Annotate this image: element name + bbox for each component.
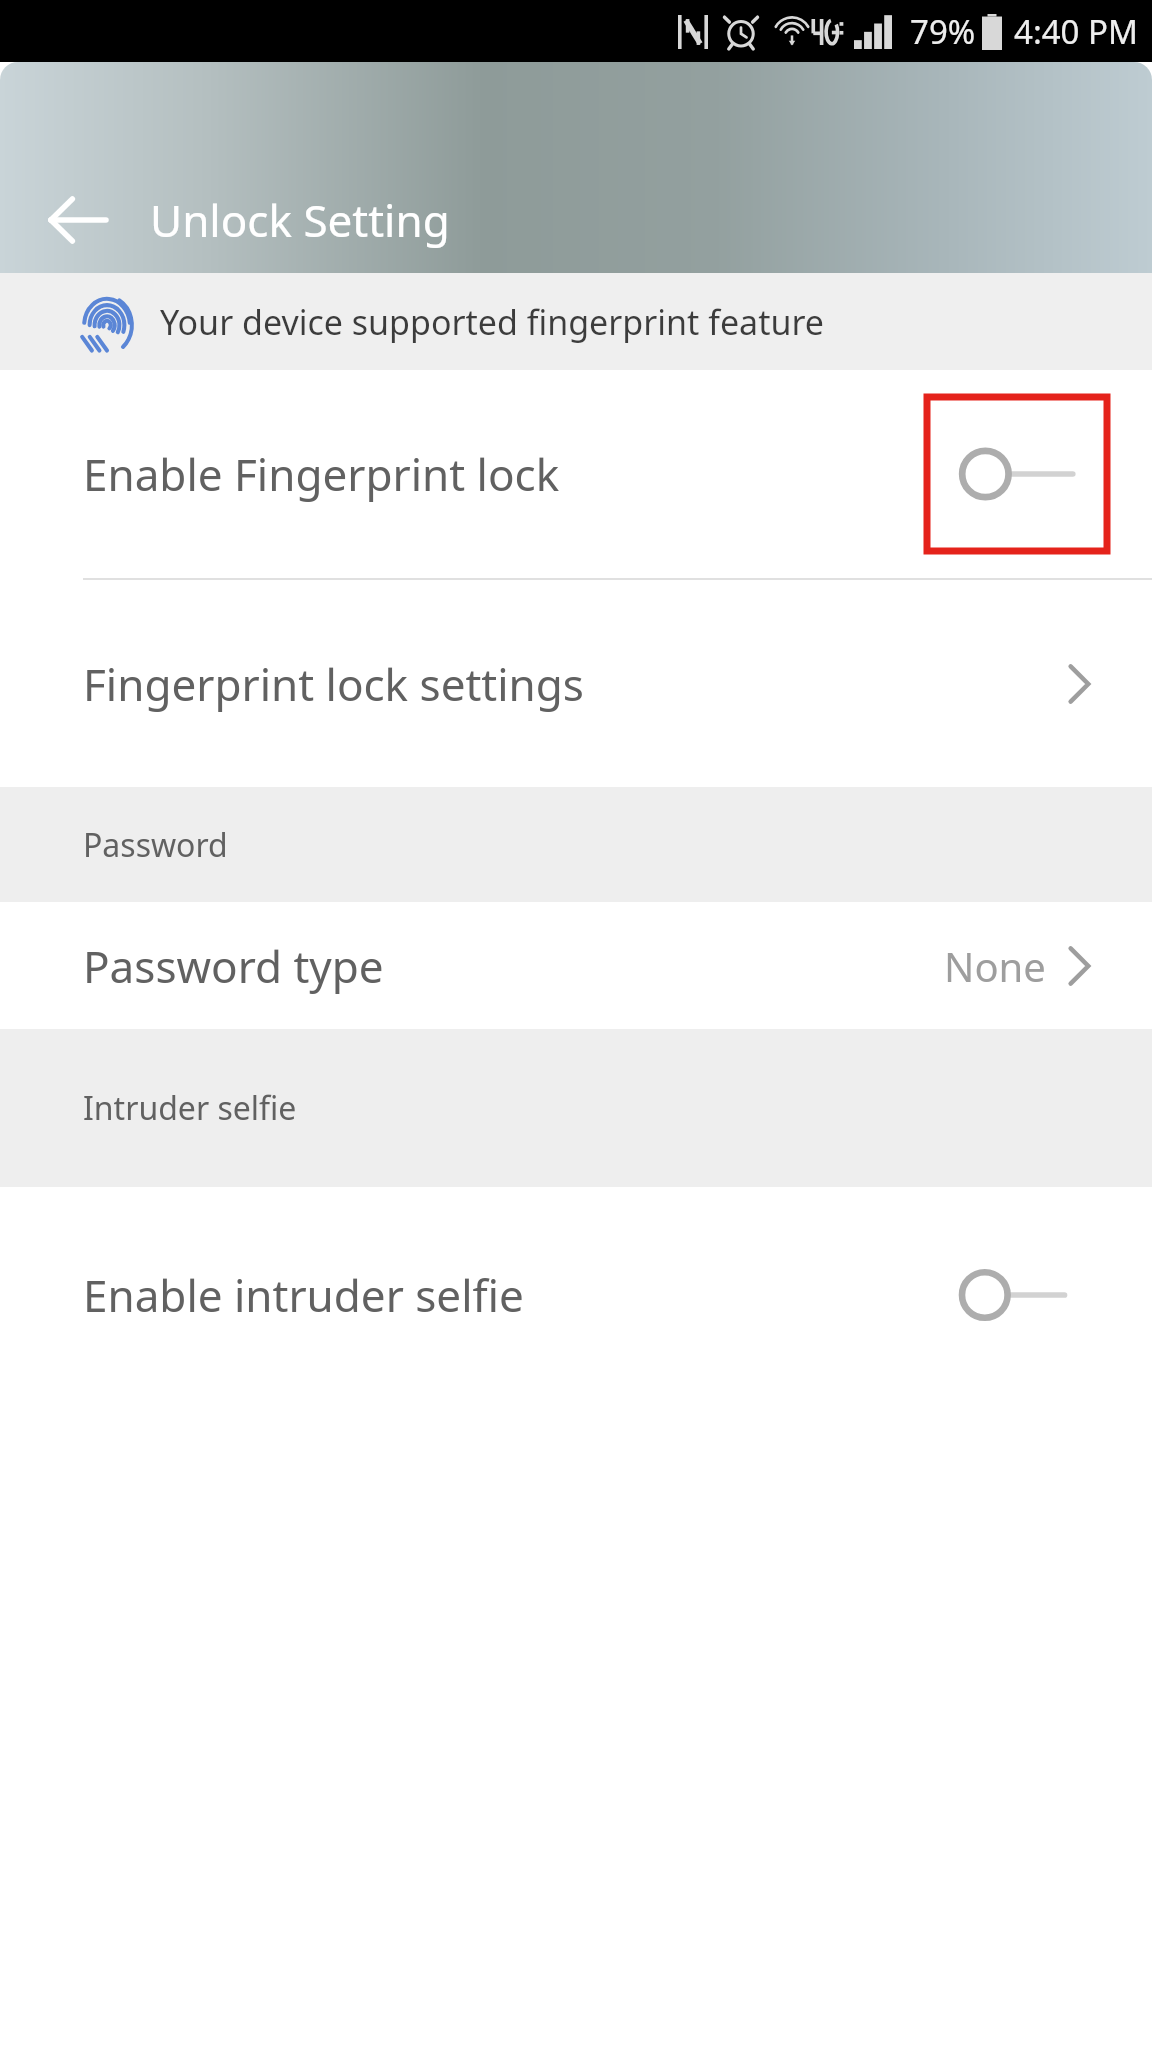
staticText: 79% [910, 9, 976, 54]
staticText: Fingerprint lock settings [83, 654, 584, 714]
staticText: Your device supported fingerprint featur… [160, 299, 824, 345]
button[interactable]: Enable Fingerprint lock [0, 370, 1152, 578]
staticText: None [944, 939, 1046, 993]
staticText: Enable Fingerprint lock [83, 444, 560, 504]
button[interactable]: Back [34, 177, 120, 263]
button[interactable]: Password type [0, 902, 1152, 1029]
staticText: Password type [83, 936, 384, 996]
staticText: Password [83, 823, 228, 867]
staticText: Enable intruder selfie [83, 1265, 524, 1325]
staticText: Intruder selfie [83, 1086, 297, 1130]
button[interactable]: Enable intruder selfie [0, 1187, 1152, 1402]
staticText: 4:40 PM [1014, 9, 1138, 54]
button[interactable]: Fingerprint lock settings [0, 580, 1152, 787]
staticText: Unlock Setting [150, 190, 450, 250]
